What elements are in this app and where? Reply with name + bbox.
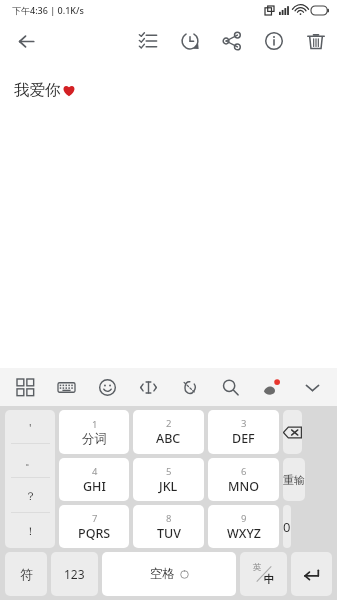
button[interactable]: 2 — [133, 410, 204, 454]
staticText: DEF — [232, 430, 255, 447]
staticText: ABC — [156, 430, 181, 447]
button[interactable]: 英 — [240, 552, 287, 596]
button[interactable]: 5 — [133, 458, 204, 501]
button[interactable]: 9 — [208, 505, 279, 548]
staticText: ' — [29, 420, 32, 435]
button[interactable]: Emoji — [87, 368, 128, 406]
button[interactable]: 符 — [5, 552, 47, 596]
button[interactable]: 空格 — [102, 552, 236, 596]
button[interactable]: 7 — [59, 505, 129, 548]
staticText: 英 — [253, 562, 262, 573]
button[interactable]: Cursor — [128, 368, 169, 406]
button[interactable] — [283, 410, 302, 454]
staticText: ？ — [25, 489, 36, 503]
staticText: 123 — [64, 566, 85, 582]
staticText: 下午4:36 | 0.1K/s — [12, 4, 84, 16]
button[interactable]: ！ — [5, 513, 55, 548]
staticText: 7 — [92, 512, 98, 525]
staticText: 6 — [241, 465, 247, 478]
button[interactable]: Reminder — [175, 26, 205, 56]
staticText: ！ — [25, 524, 36, 538]
staticText: 0 — [283, 518, 291, 536]
button[interactable]: Keyboard layout — [46, 368, 87, 406]
button[interactable]: 6 — [208, 458, 279, 501]
staticText: 中 — [264, 573, 275, 586]
button[interactable]: Delete — [301, 26, 331, 56]
staticText: JKL — [159, 478, 178, 495]
button[interactable]: 4 — [59, 458, 129, 501]
staticText: TUV — [157, 525, 181, 542]
staticText: 分词 — [82, 431, 107, 447]
staticText: 空格 — [150, 566, 175, 582]
button[interactable]: Hide keyboard — [292, 368, 333, 406]
button[interactable]: 8 — [133, 505, 204, 548]
staticText: 符 — [20, 566, 33, 582]
staticText: 9 — [241, 512, 247, 525]
staticText: 8 — [166, 512, 172, 525]
button[interactable] — [291, 552, 332, 596]
staticText: MNO — [228, 478, 259, 495]
staticText: GHI — [83, 478, 106, 495]
button[interactable]: Search — [210, 368, 251, 406]
staticText: 2 — [166, 417, 172, 430]
staticText: WXYZ — [227, 525, 261, 542]
button[interactable]: ？ — [5, 478, 55, 513]
button[interactable]: ' — [5, 410, 55, 444]
button[interactable]: Back — [8, 23, 44, 59]
button[interactable]: 。 — [5, 444, 55, 478]
button[interactable]: 0 — [283, 505, 291, 548]
staticText: 3 — [241, 417, 247, 430]
button[interactable]: 3 — [208, 410, 279, 454]
staticText: 我爱你 — [14, 80, 61, 100]
button[interactable]: Clipboard — [169, 368, 210, 406]
button[interactable]: Share — [217, 26, 247, 56]
button[interactable]: 重输 — [283, 458, 305, 501]
staticText: 4 — [92, 465, 98, 478]
button[interactable]: Apps — [4, 368, 46, 406]
staticText: 1 — [92, 418, 98, 431]
button[interactable]: Info — [259, 26, 289, 56]
staticText: 。 — [25, 454, 36, 468]
staticText: PQRS — [78, 525, 111, 542]
button[interactable]: Checklist — [133, 26, 163, 56]
button[interactable]: 1 — [59, 410, 129, 454]
staticText: 5 — [166, 465, 172, 478]
button[interactable]: Handwriting — [251, 368, 292, 406]
staticText: 重输 — [283, 473, 305, 487]
button[interactable]: 123 — [51, 552, 98, 596]
